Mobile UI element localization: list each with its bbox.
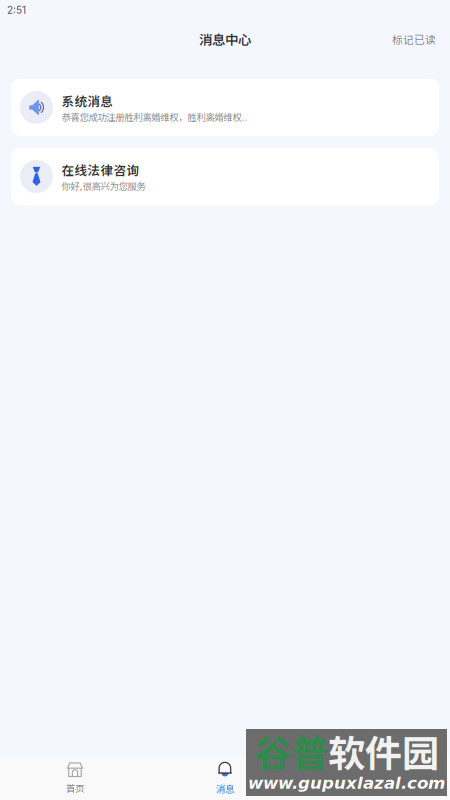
staticText: 系统消息 — [61, 92, 113, 110]
staticText: 标记已读 — [392, 31, 436, 47]
button[interactable]: 消息 — [150, 757, 300, 800]
button[interactable]: 在线法律咨询 — [11, 148, 439, 205]
staticText: 消息中心 — [199, 29, 251, 49]
staticText: 2:51 — [7, 4, 26, 16]
staticText: 消息 — [216, 782, 234, 795]
button[interactable]: 标记已读 — [392, 31, 450, 47]
staticText: 恭喜您成功注册胜利离婚维权，胜利离婚维权.. — [61, 110, 247, 123]
button[interactable]: 系统消息 — [11, 79, 439, 136]
staticText: 你好,很高兴为您服务 — [61, 179, 145, 192]
button[interactable]: 首页 — [0, 757, 150, 800]
staticText: 首页 — [66, 781, 84, 795]
staticText: 软件园 — [328, 724, 439, 778]
staticText: www.gupuxlazal.com — [248, 773, 445, 793]
staticText: 在线法律咨询 — [61, 161, 139, 179]
staticText: 谷普 — [254, 724, 328, 778]
